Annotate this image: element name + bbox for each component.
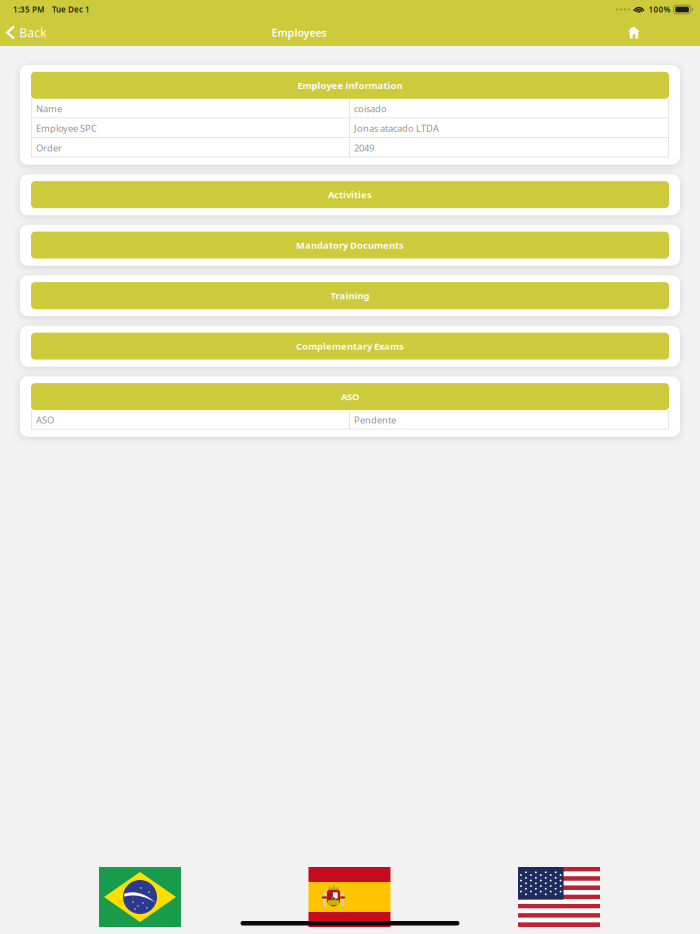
staticText: Back	[19, 24, 46, 40]
staticText: ASO	[36, 414, 54, 426]
button[interactable]: Portuguese	[99, 867, 181, 927]
button[interactable]: Spanish	[308, 867, 390, 927]
staticText: Employee SPC	[36, 122, 97, 134]
button[interactable]: Complementary Exams	[20, 326, 680, 367]
button[interactable]: Home	[619, 19, 649, 46]
button[interactable]: Mandatory Documents	[20, 225, 680, 266]
button[interactable]: Training	[20, 275, 680, 316]
staticText: Pendente	[354, 414, 396, 426]
staticText: ASO	[341, 390, 359, 403]
staticText: Training	[330, 289, 369, 302]
staticText: 100%	[649, 4, 671, 15]
staticText: Tue Dec 1	[52, 4, 90, 15]
staticText: Employee information	[297, 79, 402, 91]
staticText: 2049	[354, 142, 374, 154]
staticText: Mandatory Documents	[296, 239, 404, 251]
staticText: Complementary Exams	[296, 340, 404, 352]
button[interactable]: Back	[0, 19, 68, 46]
staticText: Employees	[271, 25, 326, 40]
staticText: Jonas atacado LTDA	[354, 122, 439, 134]
staticText: Activities	[328, 188, 372, 201]
staticText: 1:35 PM	[13, 4, 44, 15]
staticText: Order	[36, 142, 62, 154]
staticText: coisado	[354, 102, 387, 115]
button[interactable]: Activities	[20, 174, 680, 215]
button[interactable]: English	[518, 867, 600, 927]
staticText: Name	[36, 102, 62, 115]
